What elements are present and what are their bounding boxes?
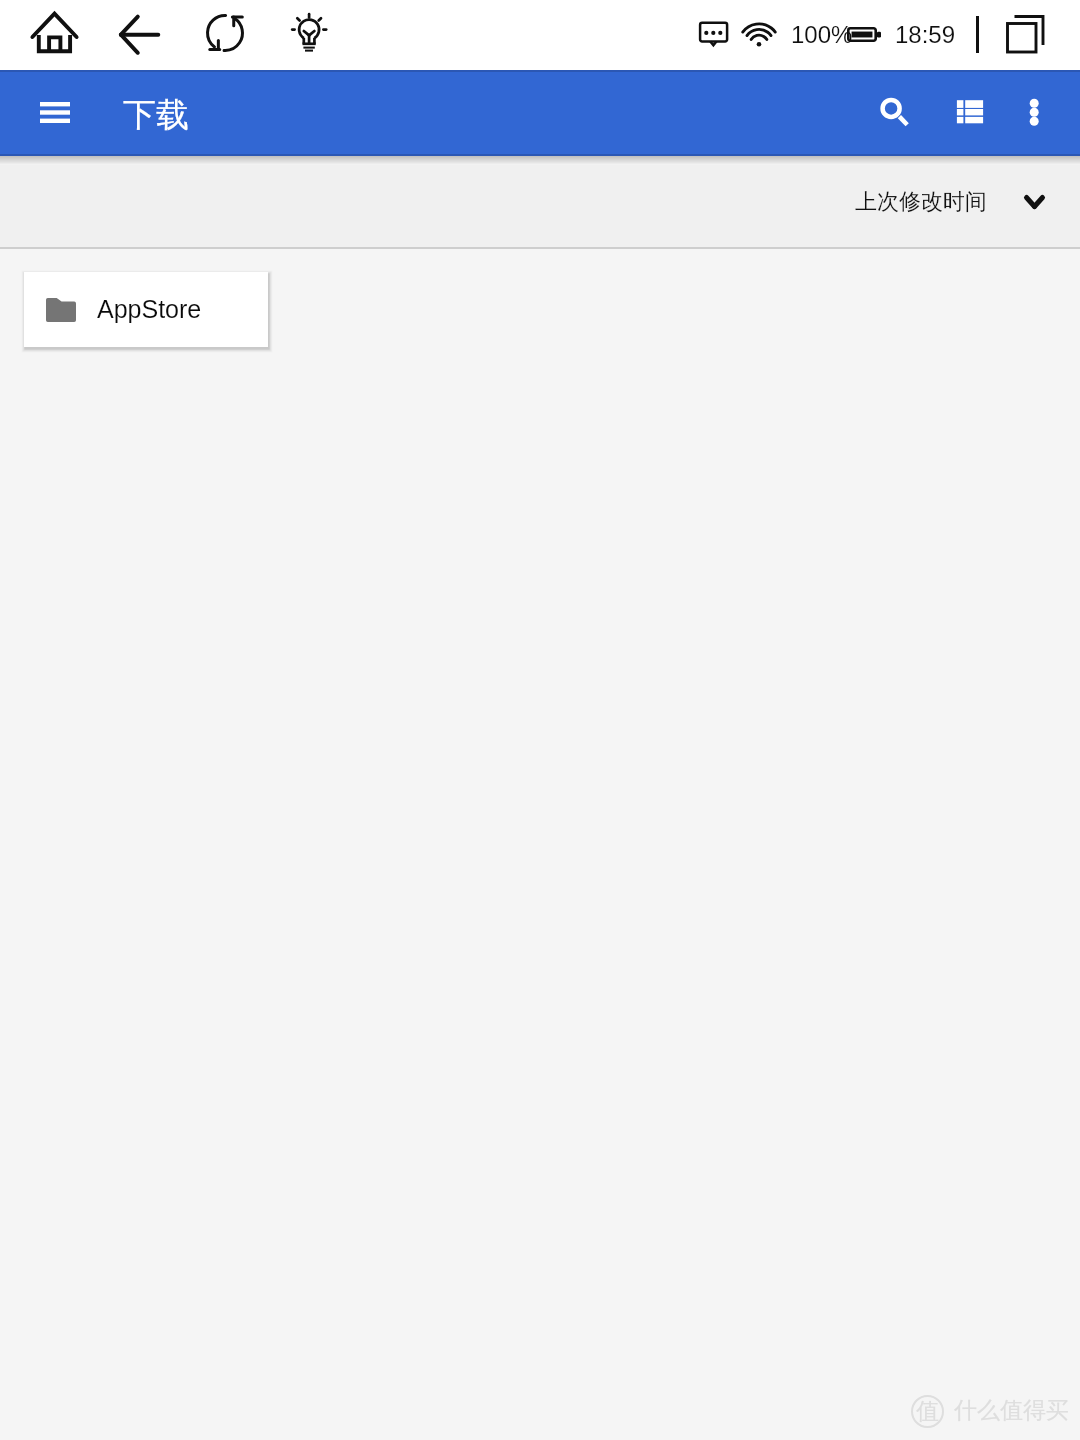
button[interactable]: AppStore — [24, 272, 268, 347]
staticText: AppStore — [97, 295, 202, 323]
button[interactable]: 上次修改时间 — [855, 165, 1045, 247]
staticText: 18:59 — [895, 21, 956, 48]
staticText: 下载 — [123, 94, 189, 136]
staticText: 值 — [916, 1397, 939, 1426]
button[interactable]: Search — [879, 96, 909, 126]
staticText: 100% — [791, 21, 853, 48]
staticText: 上次修改时间 — [855, 188, 987, 216]
button[interactable]: Recent apps — [1005, 14, 1047, 54]
button[interactable]: List view — [956, 100, 984, 124]
button[interactable]: Brightness — [290, 11, 328, 55]
button[interactable]: Menu — [40, 102, 70, 123]
staticText: 什么值得买 — [954, 1396, 1069, 1425]
button[interactable]: Back — [119, 15, 159, 54]
button[interactable]: More options — [1024, 98, 1044, 125]
button[interactable]: Refresh — [206, 14, 244, 52]
button[interactable]: Home — [31, 12, 77, 53]
